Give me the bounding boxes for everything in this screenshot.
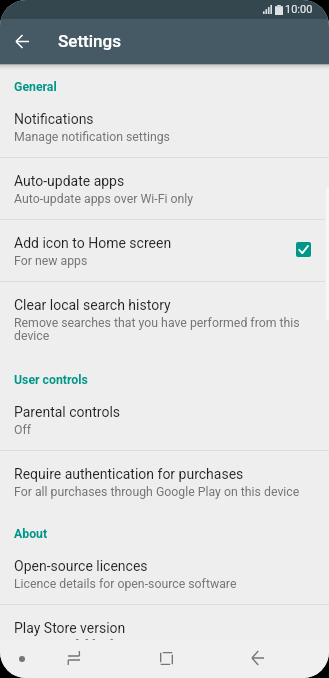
staticText: Remove searches that you have performed … [14, 316, 311, 343]
button[interactable]: Add icon to Home screen [0, 220, 329, 281]
staticText: Clear local search history [14, 297, 171, 313]
staticText: 10:00 [285, 3, 313, 16]
button[interactable]: Back [7, 26, 37, 56]
staticText: Settings [58, 31, 121, 51]
button[interactable]: Clear local search history [0, 282, 329, 356]
button[interactable]: Back [246, 646, 270, 670]
button[interactable]: Require authentication for purchases [0, 451, 329, 512]
staticText: Add icon to Home screen [14, 235, 172, 251]
staticText: User controls [14, 373, 88, 387]
button[interactable]: Open-source licences [0, 545, 329, 604]
staticText: For new apps [14, 254, 88, 268]
staticText: Manage notification settings [14, 130, 170, 144]
staticText: Open-source licences [14, 558, 148, 574]
button[interactable]: Notification dot [13, 650, 31, 668]
button[interactable]: Parental controls [0, 391, 329, 450]
staticText: Parental controls [14, 404, 121, 420]
staticText: General [14, 80, 57, 94]
staticText: Play Store version [14, 620, 126, 636]
staticText: For all purchases through Google Play on… [14, 485, 300, 499]
button[interactable]: Recent apps [62, 646, 86, 670]
staticText: Auto-update apps [14, 173, 125, 189]
staticText: Licence details for open-source software [14, 577, 237, 591]
button[interactable]: Notifications [0, 98, 329, 157]
button[interactable]: Play Store version [0, 605, 329, 666]
button[interactable]: Home [154, 646, 178, 670]
staticText: Off [14, 423, 32, 437]
button[interactable]: Auto-update apps [0, 158, 329, 219]
staticText: Notifications [14, 111, 94, 127]
staticText: About [14, 527, 48, 541]
staticText: Auto-update apps over Wi-Fi only [14, 192, 194, 206]
staticText: Require authentication for purchases [14, 466, 244, 482]
staticText: 29.6.16-21 [0] [PR] 436215766 [14, 639, 179, 653]
